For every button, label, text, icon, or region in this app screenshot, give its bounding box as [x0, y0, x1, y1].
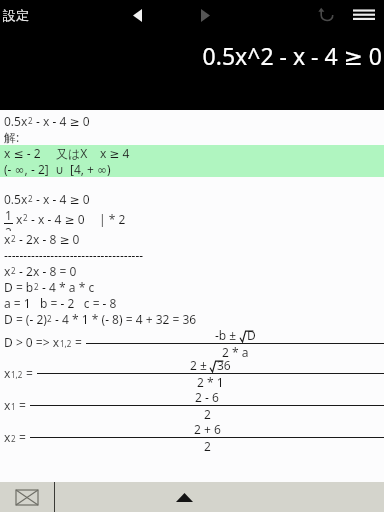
staticText: 2 [204, 406, 211, 421]
staticText: 0.5x^2 - x - 4 ≥ 0 [202, 40, 382, 71]
staticText: x [4, 429, 11, 445]
staticText: x [4, 397, 11, 413]
staticText: x [16, 211, 23, 227]
staticText: 2 + 6 [194, 421, 221, 437]
staticText: 2 * a [222, 344, 249, 357]
staticText: 2 [11, 233, 16, 244]
staticText: 2 [11, 265, 16, 276]
staticText: 1,2 [60, 338, 72, 349]
staticText: (- ∞, - 2] ∪ [4, + ∞) [4, 161, 111, 177]
staticText: - 4 * 1 * (- 8) = 4 + 32 = 36 [52, 311, 197, 327]
staticText: 2 ± [190, 357, 210, 373]
button[interactable]: Previous [120, 0, 154, 30]
staticText: x [4, 263, 11, 279]
staticText: 2 [11, 433, 16, 444]
staticText: - 2x - 8 = 0 [16, 263, 77, 279]
staticText: -b ± [215, 327, 240, 343]
button[interactable]: Undo [308, 0, 344, 30]
staticText: 36 [217, 357, 231, 373]
button[interactable]: Mail [0, 482, 54, 512]
staticText: = [23, 365, 37, 381]
staticText: 2 [204, 438, 211, 453]
staticText: x [4, 231, 11, 247]
staticText: 2 [28, 115, 33, 126]
staticText: D = b [4, 279, 34, 295]
staticText: ------------------------------------ [4, 247, 144, 263]
staticText: 0.5x [4, 191, 28, 207]
staticText: 解: [4, 129, 20, 145]
button[interactable]: Menu [344, 0, 384, 30]
staticText: - x - 4 ≥ 0 [33, 113, 90, 129]
staticText: 2 [5, 224, 12, 231]
staticText: = [16, 397, 30, 413]
staticText: - 2x - 8 ≥ 0 [16, 231, 80, 247]
staticText: 1,2 [11, 369, 23, 380]
staticText: | * 2 [99, 211, 126, 227]
staticText: = [72, 334, 86, 350]
staticText: 1 [5, 207, 12, 223]
staticText: 2 - 6 [195, 389, 219, 405]
staticText: 2 [23, 212, 28, 223]
staticText: D = (- 2) [4, 311, 47, 327]
staticText: 1 [11, 401, 16, 412]
staticText: 2 [28, 193, 33, 204]
staticText: - 4 * a * c [39, 279, 95, 295]
staticText: 設定 [3, 7, 29, 23]
staticText: a = 1 b = - 2 c = - 8 [4, 295, 117, 311]
button[interactable]: Scroll up [55, 482, 384, 512]
staticText: - x - 4 ≥ 0 [33, 191, 90, 207]
staticText: 2 [34, 281, 39, 292]
staticText: - x - 4 ≥ 0 [28, 211, 85, 227]
staticText: x [4, 365, 11, 381]
button[interactable]: Next [188, 0, 222, 30]
staticText: = [16, 429, 30, 445]
staticText: 2 [47, 313, 52, 324]
staticText: D > 0 => x [4, 334, 60, 350]
staticText: x ≤ - 2 又はX x ≥ 4 [4, 145, 130, 161]
staticText: D [247, 327, 256, 343]
staticText: 2 * 1 [197, 374, 224, 389]
staticText: 0.5x [4, 113, 28, 129]
button[interactable]: 設定 [0, 7, 35, 23]
